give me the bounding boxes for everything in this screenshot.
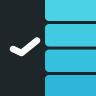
button[interactable]: Task 1 [45,0,96,21]
button[interactable]: Task 4 [45,75,96,96]
button[interactable]: Task 3 [45,49,96,72]
button[interactable]: Task 2 [45,24,96,46]
